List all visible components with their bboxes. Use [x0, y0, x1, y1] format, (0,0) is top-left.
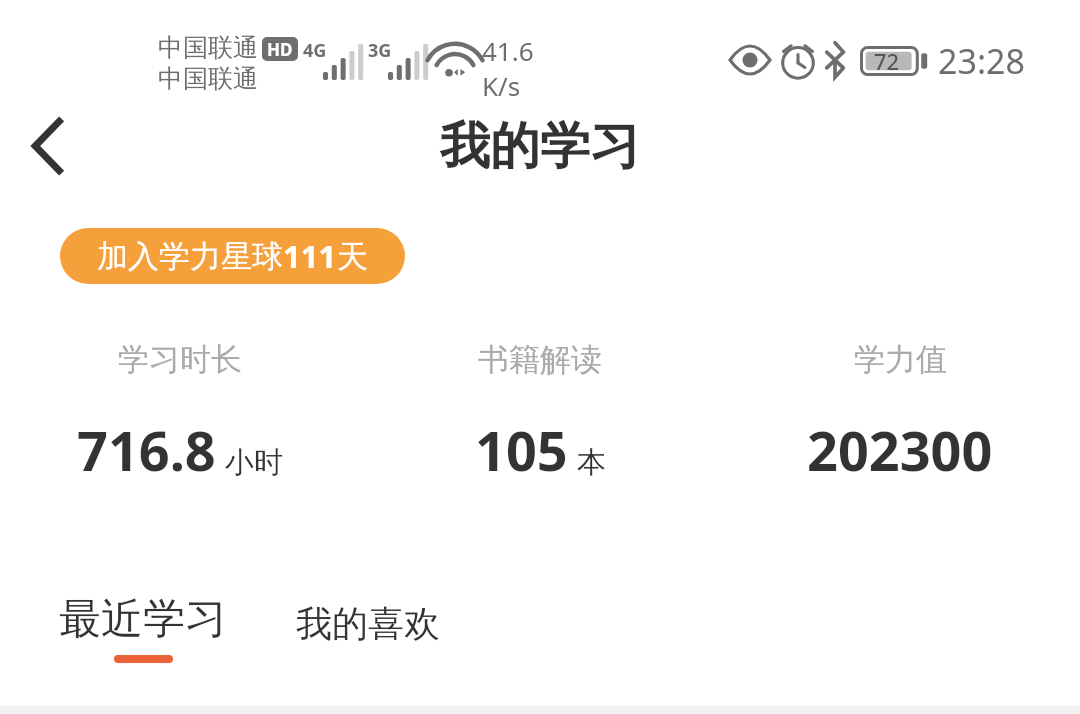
staticText: 最近学习 — [59, 593, 227, 646]
button[interactable]: Back — [0, 100, 96, 192]
button[interactable]: 书籍解读 — [360, 340, 720, 487]
staticText: HD — [267, 38, 293, 61]
staticText: 716.8 — [77, 413, 216, 487]
staticText: 3G — [368, 38, 392, 63]
staticText: 41.6 — [482, 33, 534, 68]
staticText: 我的学习 — [0, 115, 1080, 178]
staticText: 天 — [337, 237, 368, 276]
staticText: 加入学力星球 — [97, 237, 283, 276]
staticText: 学习时长 — [118, 340, 242, 379]
staticText: 本 — [577, 444, 606, 481]
staticText: 书籍解读 — [478, 340, 602, 379]
button[interactable]: 最近学习 — [40, 585, 246, 675]
staticText: K/s — [482, 68, 521, 103]
other: Eye protection — [730, 46, 770, 74]
button[interactable]: 我的喜欢 — [276, 585, 476, 675]
other: Alarm — [781, 42, 815, 78]
other: Bluetooth — [822, 42, 848, 78]
staticText: 学力值 — [854, 340, 947, 379]
staticText: 中国联通 — [158, 63, 258, 94]
staticText: 小时 — [225, 444, 283, 481]
staticText: 202300 — [807, 413, 993, 487]
button[interactable]: 加入学力星球 — [60, 228, 405, 284]
staticText: 23:28 — [938, 38, 1025, 84]
staticText: 72 — [874, 46, 900, 76]
staticText: 中国联通 — [158, 32, 258, 63]
staticText: 111 — [283, 235, 337, 277]
staticText: 4G — [303, 38, 327, 63]
button[interactable]: 学力值 — [720, 340, 1080, 487]
button[interactable]: 学习时长 — [0, 340, 360, 487]
other: Battery 72 percent — [860, 46, 930, 76]
staticText: 我的喜欢 — [296, 601, 440, 646]
staticText: 105 — [475, 413, 568, 487]
